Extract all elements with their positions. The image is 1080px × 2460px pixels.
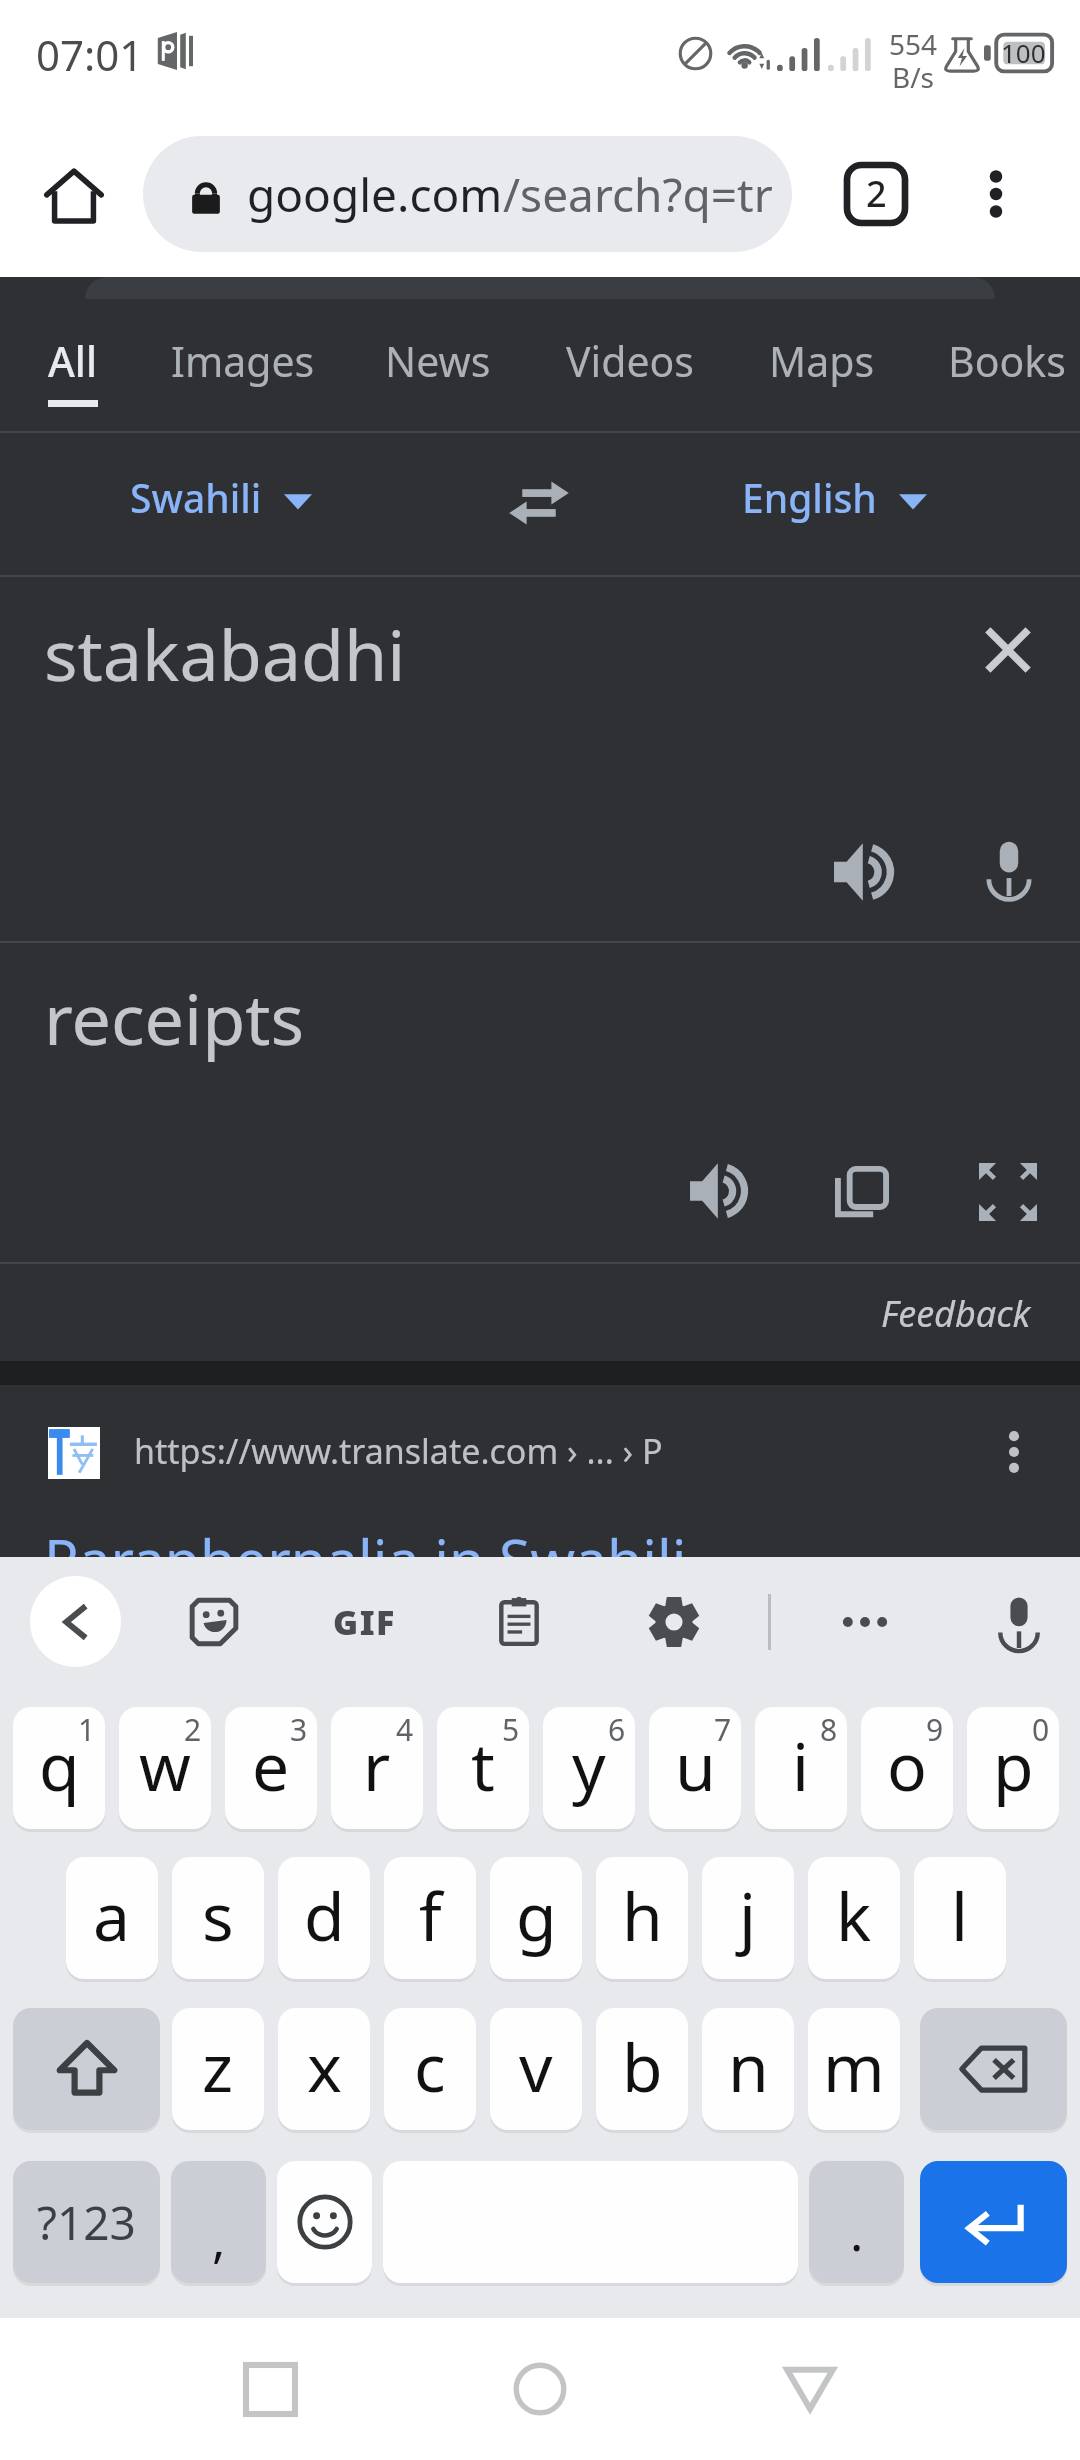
button[interactable]: GIF [320,1578,408,1666]
button[interactable]: All [48,333,97,389]
staticText: h [622,1870,663,1960]
button[interactable]: o [861,1707,953,1829]
staticText: 5 [502,1709,520,1750]
button[interactable]: s [172,1857,264,1979]
staticText: 2 [866,169,887,218]
staticText: 8 [820,1709,838,1750]
button[interactable]: Books [948,333,1066,389]
button[interactable]: Clipboard [475,1578,563,1666]
button[interactable]: p [967,1707,1059,1829]
button[interactable]: Full screen [963,1147,1053,1237]
button[interactable]: u [649,1707,741,1829]
button[interactable]: x [278,2008,370,2130]
button[interactable]: , [171,2161,266,2283]
staticText: , [212,2205,226,2273]
button[interactable]: c [384,2008,476,2130]
button[interactable]: n [702,2008,794,2130]
button[interactable]: Back [760,2339,860,2439]
button[interactable]: Home [28,150,120,242]
button[interactable]: Swap languages [489,453,589,553]
button[interactable]: Customize and control Chrome [950,148,1042,240]
button[interactable]: Home [490,2339,590,2439]
staticText: i [792,1720,810,1810]
button[interactable]: Shift [13,2008,160,2130]
button[interactable]: z [172,2008,264,2130]
button[interactable]: Back [30,1576,121,1667]
button[interactable]: About this result [972,1410,1056,1494]
button[interactable]: j [702,1857,794,1979]
staticText: Videos [566,333,694,389]
staticText: a [93,1870,131,1960]
staticText: receipts [44,970,304,1065]
staticText: ?123 [37,2191,136,2254]
button[interactable]: ?123 [13,2161,160,2283]
button[interactable]: m [808,2008,900,2130]
button[interactable]: Enter [920,2161,1067,2283]
button[interactable]: k [808,1857,900,1979]
staticText: f [419,1870,442,1960]
staticText: v [519,2021,553,2111]
button[interactable]: e [225,1707,317,1829]
button[interactable]: Maps [769,333,875,389]
button[interactable]: Swahili [126,471,316,524]
staticText: g [516,1870,557,1960]
button[interactable]: Images [171,333,315,389]
button[interactable]: a [66,1857,158,1979]
button[interactable]: Switch or close tabs, 2 open [830,148,922,240]
button[interactable]: Paraphernalia in Swahili [44,1520,687,1598]
staticText: 6 [608,1709,626,1750]
button[interactable]: Feedback [881,1289,1031,1338]
button[interactable]: Stickers [170,1578,258,1666]
staticText: q [39,1720,80,1810]
button[interactable]: Voice input [975,1578,1063,1666]
button[interactable]: Speak [964,825,1054,915]
button[interactable]: y [543,1707,635,1829]
button[interactable]: Emoji [277,2161,372,2283]
staticText: k [836,1870,872,1960]
button[interactable]: google.com [143,136,792,252]
staticText: e [252,1720,290,1810]
staticText: stakabadhi [44,606,406,701]
button[interactable]: l [914,1857,1006,1979]
staticText: English [742,471,877,524]
button[interactable]: . [809,2161,904,2283]
button[interactable]: Recent apps [220,2339,320,2439]
button[interactable]: q [13,1707,105,1829]
button[interactable]: g [490,1857,582,1979]
staticText: j [739,1870,757,1960]
button[interactable]: Listen to source text [819,827,909,917]
button[interactable]: Settings [630,1578,718,1666]
staticText: b [622,2021,663,2111]
button[interactable]: t [437,1707,529,1829]
staticText: d [304,1870,345,1960]
button[interactable]: h [596,1857,688,1979]
button[interactable]: English [738,471,931,524]
button[interactable]: d [278,1857,370,1979]
staticText: c [414,2021,446,2111]
staticText: p [993,1720,1034,1810]
staticText: Swahili [130,471,262,524]
staticText: 3 [290,1709,308,1750]
button[interactable]: Listen to translation [674,1146,764,1236]
staticText: /search?q=tr [503,163,773,226]
staticText: 9 [926,1709,944,1750]
staticText: 554 [889,25,938,63]
button[interactable]: b [596,2008,688,2130]
staticText: l [951,1870,969,1960]
button[interactable]: f [384,1857,476,1979]
button[interactable]: Videos [566,333,694,389]
button[interactable]: v [490,2008,582,2130]
staticText: t [471,1720,495,1810]
staticText: r [363,1720,391,1810]
staticText: Images [171,333,315,389]
button[interactable]: r [331,1707,423,1829]
staticText: GIF [333,1599,396,1645]
button[interactable]: News [385,333,491,389]
button[interactable]: w [119,1707,211,1829]
button[interactable]: Backspace [920,2008,1067,2130]
button[interactable]: Copy translation [817,1148,907,1238]
button[interactable]: More options [821,1578,909,1666]
button[interactable]: i [755,1707,847,1829]
button[interactable]: Clear [963,605,1053,695]
